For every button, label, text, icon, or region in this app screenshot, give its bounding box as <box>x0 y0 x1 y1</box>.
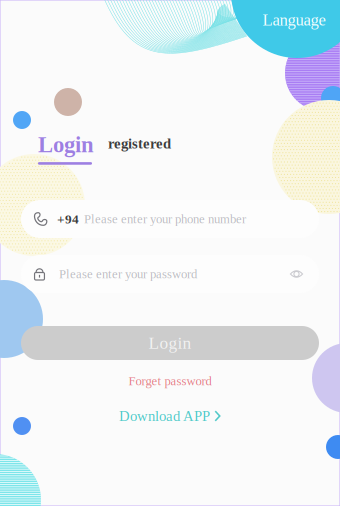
button[interactable]: Forget password <box>0 371 340 391</box>
button[interactable]: Show password <box>282 257 311 290</box>
staticText: Please enter your password <box>59 267 197 281</box>
button[interactable]: Login <box>21 326 319 360</box>
button[interactable]: Login <box>38 132 94 165</box>
staticText: Please enter your phone number <box>84 212 246 226</box>
staticText: Language <box>262 11 325 29</box>
button[interactable]: Download APP <box>0 405 340 427</box>
staticText: Download APP <box>119 408 210 424</box>
staticText: registered <box>108 135 171 152</box>
button[interactable]: registered <box>108 135 171 165</box>
staticText: Forget password <box>128 374 211 388</box>
staticText: Login <box>148 333 191 353</box>
button[interactable]: Language <box>255 7 333 33</box>
staticText: Login <box>38 132 94 157</box>
staticText: +94 <box>57 212 79 226</box>
